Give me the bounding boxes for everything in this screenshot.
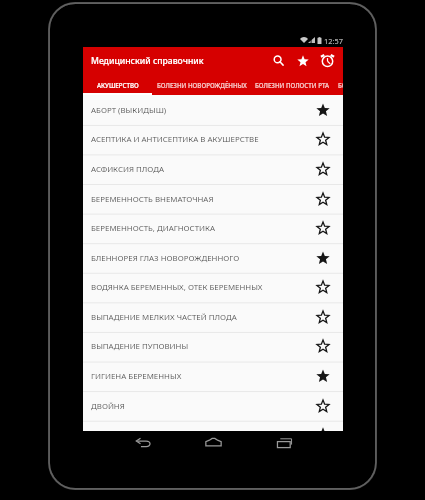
button[interactable]: ГИГИЕНА БЕРЕМЕННЫХ bbox=[83, 362, 343, 392]
staticText: ДВОЙНЯ bbox=[91, 401, 301, 412]
staticText: БОЛЕЗНИ УХА bbox=[338, 81, 343, 89]
staticText: БОЛЕЗНИ НОВОРОЖДЁННЫХ bbox=[157, 81, 247, 89]
button[interactable]: БЛЕННОРЕЯ ГЛАЗ НОВОРОЖДЕННОГО bbox=[83, 244, 343, 274]
staticText: 12:57 bbox=[324, 36, 343, 46]
button[interactable]: БОЛЕЗНИ НОВОРОЖДЁННЫХ bbox=[152, 74, 251, 95]
staticText: ВОДЯНКА БЕРЕМЕННЫХ, ОТЕК БЕРЕМЕННЫХ bbox=[91, 282, 301, 293]
button[interactable]: Home bbox=[201, 430, 225, 454]
button[interactable]: АКУШЕРСТВО bbox=[83, 74, 152, 95]
button[interactable]: Back bbox=[131, 431, 155, 455]
button[interactable]: АБОРТ (ВЫКИДЫШ) bbox=[83, 96, 343, 126]
button[interactable]: ДИАБЕТ БЕРЕМЕННЫХ bbox=[83, 421, 343, 431]
staticText: АБОРТ (ВЫКИДЫШ) bbox=[91, 105, 301, 116]
button[interactable]: History bbox=[313, 47, 341, 74]
button[interactable]: ВЫПАДЕНИЕ МЕЛКИХ ЧАСТЕЙ ПЛОДА bbox=[83, 303, 343, 333]
staticText: Медицинский справочник bbox=[91, 55, 204, 67]
staticText: БЕРЕМЕННОСТЬ, ДИАГНОСТИКА bbox=[91, 223, 301, 234]
staticText: АСЕПТИКА И АНТИСЕПТИКА В АКУШЕРСТВЕ bbox=[91, 134, 301, 145]
staticText: ВЫПАДЕНИЕ МЕЛКИХ ЧАСТЕЙ ПЛОДА bbox=[91, 312, 301, 323]
button[interactable]: ВОДЯНКА БЕРЕМЕННЫХ, ОТЕК БЕРЕМЕННЫХ bbox=[83, 273, 343, 303]
staticText: БЛЕННОРЕЯ ГЛАЗ НОВОРОЖДЕННОГО bbox=[91, 253, 301, 264]
staticText: ГИГИЕНА БЕРЕМЕННЫХ bbox=[91, 371, 301, 382]
button[interactable]: Search bbox=[264, 47, 292, 74]
button[interactable]: БЕРЕМЕННОСТЬ, ДИАГНОСТИКА bbox=[83, 214, 343, 244]
staticText: БОЛЕЗНИ ПОЛОСТИ РТА bbox=[255, 81, 330, 89]
button[interactable]: БОЛЕЗНИ УХА bbox=[338, 74, 343, 95]
button[interactable]: ДВОЙНЯ bbox=[83, 392, 343, 422]
staticText: АКУШЕРСТВО bbox=[97, 81, 139, 89]
button[interactable]: БОЛЕЗНИ ПОЛОСТИ РТА bbox=[249, 74, 335, 95]
button[interactable]: АСЕПТИКА И АНТИСЕПТИКА В АКУШЕРСТВЕ bbox=[83, 125, 343, 155]
staticText: АСФИКСИЯ ПЛОДА bbox=[91, 164, 301, 175]
button[interactable]: АСФИКСИЯ ПЛОДА bbox=[83, 155, 343, 185]
staticText: БЕРЕМЕННОСТЬ ВНЕМАТОЧНАЯ bbox=[91, 194, 301, 205]
button[interactable]: БЕРЕМЕННОСТЬ ВНЕМАТОЧНАЯ bbox=[83, 185, 343, 215]
staticText: ВЫПАДЕНИЕ ПУПОВИНЫ bbox=[91, 341, 301, 352]
button[interactable]: ВЫПАДЕНИЕ ПУПОВИНЫ bbox=[83, 332, 343, 362]
button[interactable]: Favorites bbox=[289, 47, 317, 74]
button[interactable]: Recents bbox=[272, 431, 296, 455]
